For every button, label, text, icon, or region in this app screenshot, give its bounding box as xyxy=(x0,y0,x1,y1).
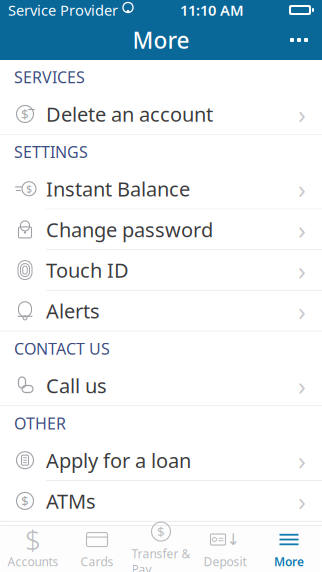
staticText: Accounts xyxy=(7,553,58,569)
staticText: › xyxy=(298,97,306,131)
staticText: $ xyxy=(26,182,32,196)
staticText: Deposit xyxy=(203,553,246,569)
staticText: More xyxy=(132,25,189,55)
staticText: SETTINGS xyxy=(14,141,88,162)
staticText: › xyxy=(298,172,306,205)
button[interactable]: $ xyxy=(1,526,65,572)
staticText: $ xyxy=(21,492,29,510)
staticText: More xyxy=(274,553,304,569)
button[interactable]: $ xyxy=(129,526,193,572)
staticText: 11:10 AM xyxy=(180,0,244,20)
staticText: Alerts xyxy=(46,297,100,324)
staticText: Instant Balance xyxy=(46,175,190,202)
staticText: ATMs xyxy=(46,488,96,514)
staticText: › xyxy=(298,443,306,477)
staticText: $ xyxy=(157,523,165,540)
button[interactable]: More xyxy=(257,526,321,572)
button[interactable]: More options xyxy=(276,20,322,60)
staticText: Call us xyxy=(46,372,107,399)
staticText: Service Provider xyxy=(8,0,118,20)
button[interactable]: Cards xyxy=(65,526,129,572)
staticText: Apply for a loan xyxy=(46,447,191,473)
staticText: › xyxy=(298,369,306,402)
staticText: Touch ID xyxy=(46,257,129,283)
button[interactable]: $ xyxy=(0,481,322,522)
staticText: › xyxy=(298,484,306,518)
button[interactable]: $ xyxy=(0,94,322,135)
button[interactable]: Apply for a loan xyxy=(0,440,322,481)
staticText: OTHER xyxy=(14,413,66,434)
button[interactable]: $ xyxy=(0,169,322,209)
button[interactable]: Touch ID xyxy=(0,250,322,291)
staticText: SERVICES xyxy=(14,66,85,88)
staticText: ↓ xyxy=(226,530,239,549)
staticText: Change password xyxy=(46,216,213,243)
staticText: › xyxy=(298,253,306,287)
button[interactable]: Call us xyxy=(0,365,322,406)
staticText: Transfer & Pay xyxy=(131,546,190,572)
staticText: › xyxy=(298,213,306,246)
staticText: Cards xyxy=(80,553,113,569)
button[interactable]: ↓ xyxy=(193,526,257,572)
staticText: Delete an account xyxy=(46,101,213,127)
staticText: $ xyxy=(21,105,29,123)
staticText: CONTACT US xyxy=(14,338,110,359)
staticText: › xyxy=(298,294,306,328)
staticText: $ xyxy=(25,521,41,558)
button[interactable]: Change password xyxy=(0,209,322,250)
button[interactable]: Alerts xyxy=(0,291,322,331)
